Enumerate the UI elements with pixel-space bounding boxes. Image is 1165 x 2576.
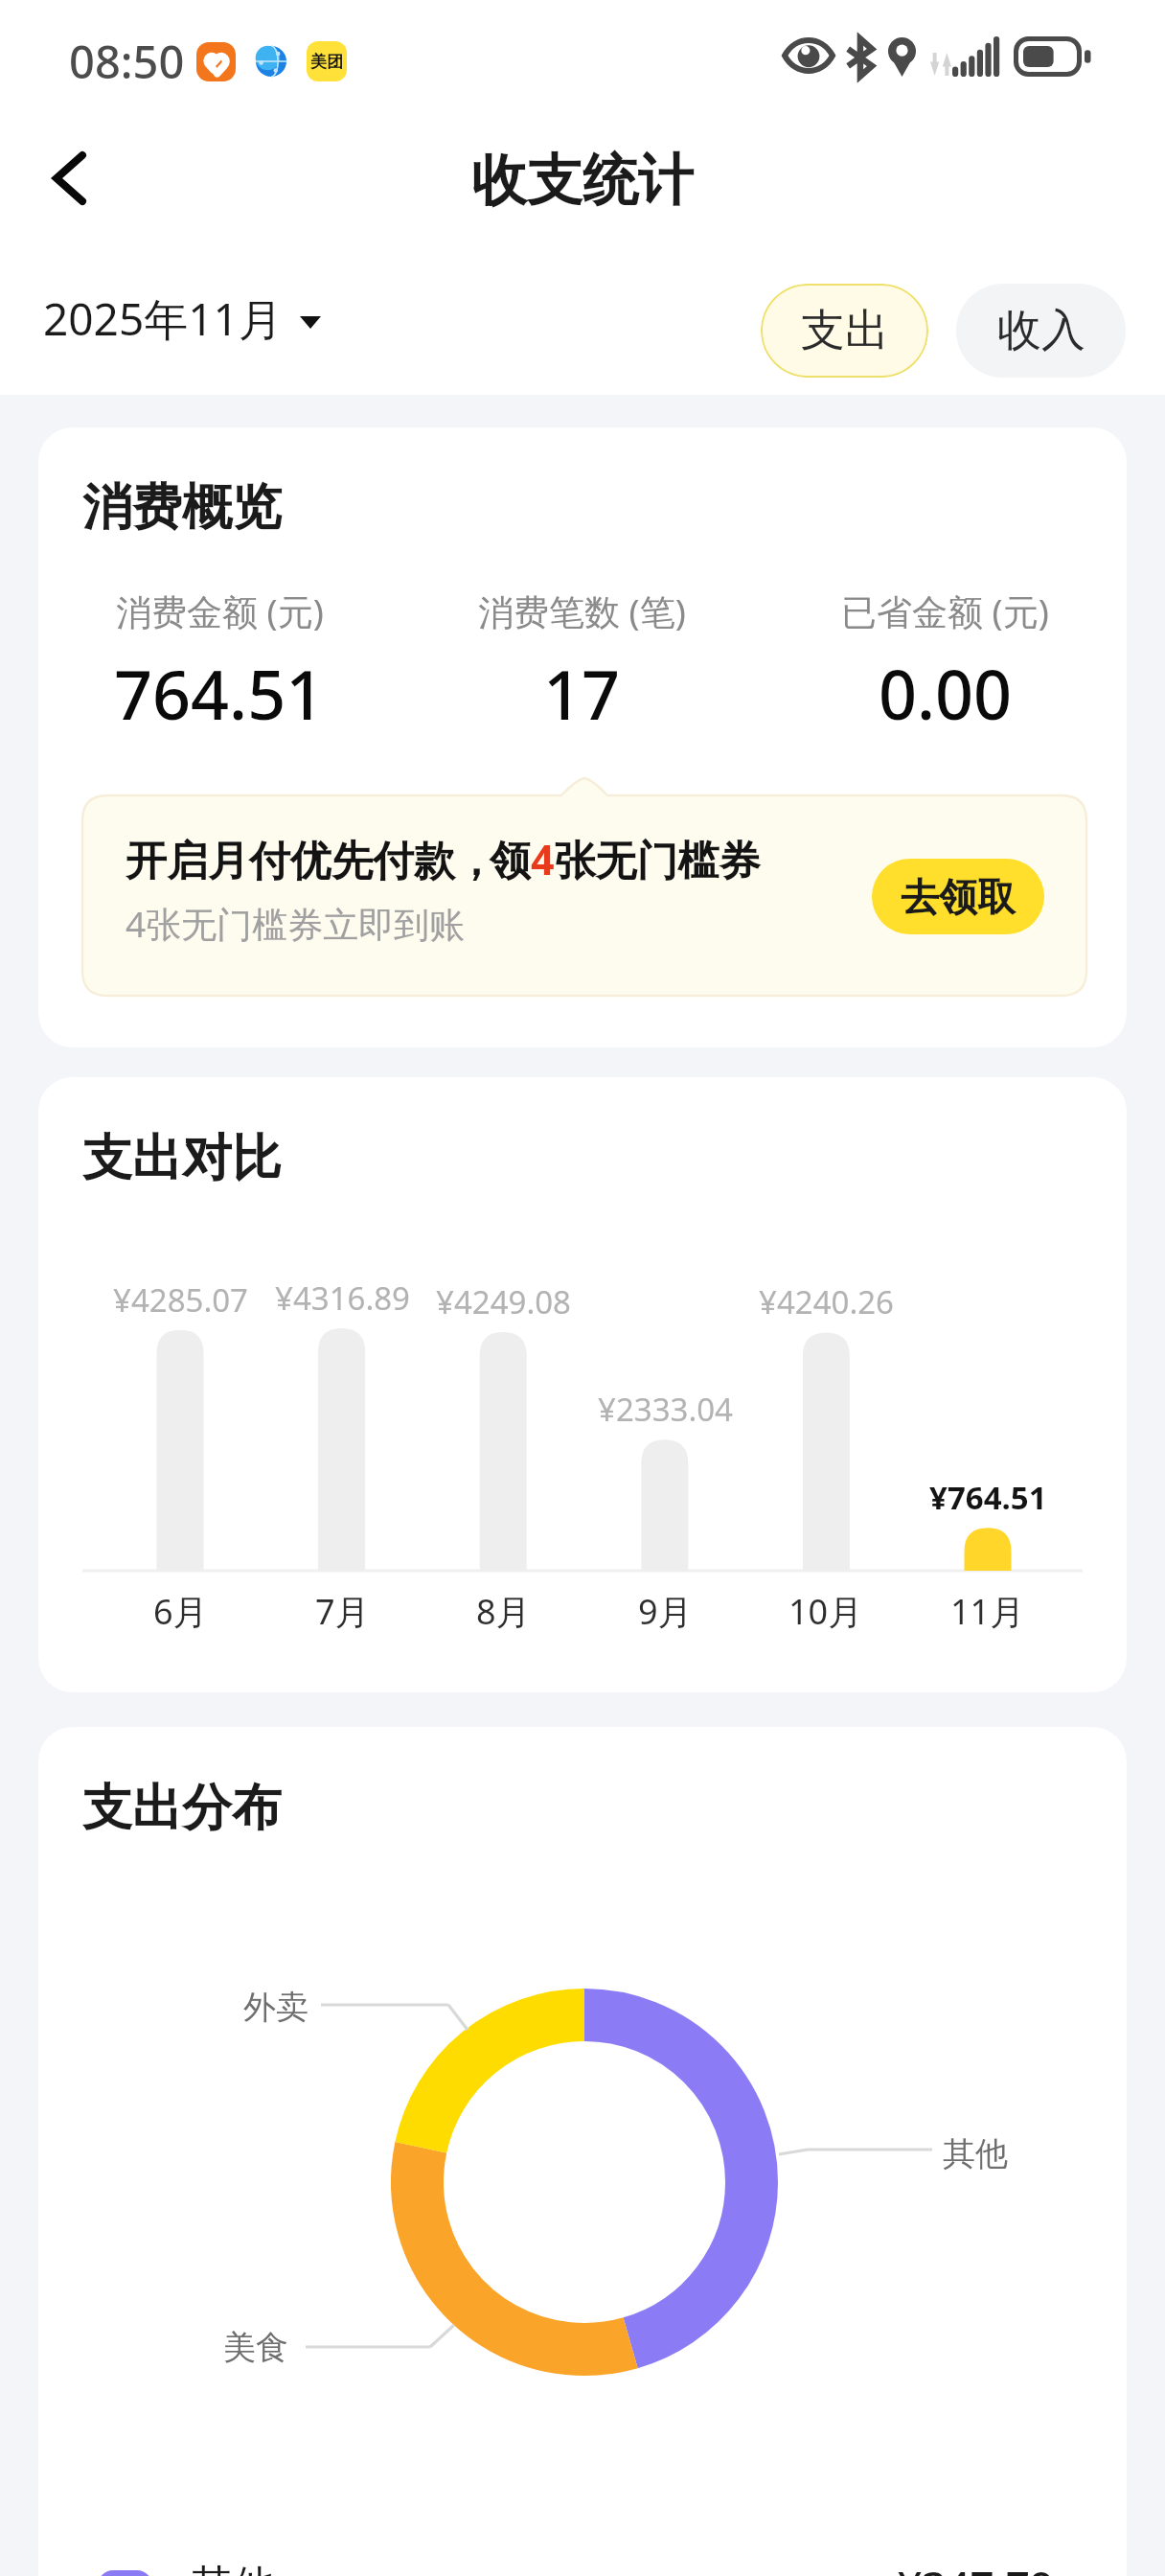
- button[interactable]: 2025年11月: [43, 288, 321, 349]
- staticText: ¥4316.89: [275, 1276, 410, 1320]
- button[interactable]: 其他: [98, 2557, 1054, 2576]
- staticText: ¥2333.04: [598, 1388, 733, 1431]
- staticText: 其他: [943, 2133, 1008, 2174]
- staticText: 2025年11月: [43, 288, 283, 349]
- staticText: 08:50: [69, 31, 185, 92]
- staticText: 外卖: [243, 1987, 308, 2028]
- staticText: 消费笔数 (笔): [478, 586, 686, 635]
- staticText: 美食: [223, 2327, 288, 2368]
- staticText: ¥4240.26: [759, 1280, 894, 1323]
- staticText: 4张无门槛券立即到账: [126, 899, 466, 948]
- button[interactable]: 收入: [956, 284, 1126, 378]
- staticText: 美团: [310, 52, 343, 72]
- staticText: ¥4285.07: [113, 1278, 248, 1322]
- staticText: 去领取: [901, 873, 1016, 921]
- staticText: 收入: [997, 303, 1085, 358]
- staticText: 支出对比: [82, 1127, 282, 1190]
- staticText: 11月: [950, 1588, 1025, 1635]
- staticText: 支出: [801, 303, 889, 358]
- staticText: 9月: [638, 1588, 693, 1635]
- staticText: 6月: [153, 1588, 208, 1635]
- staticText: 开启月付优先付款，领4张无门槛券: [126, 831, 761, 887]
- staticText: 其他: [191, 2560, 275, 2576]
- staticText: 0.00: [879, 648, 1013, 739]
- staticText: 已省金额 (元): [841, 586, 1049, 635]
- staticText: 收支统计: [471, 146, 694, 216]
- staticText: 764.51: [114, 648, 325, 739]
- staticText: 17: [543, 648, 621, 739]
- staticText: 8月: [476, 1588, 531, 1635]
- staticText: ¥764.51: [929, 1476, 1047, 1519]
- button[interactable]: Back: [33, 142, 105, 215]
- staticText: 7月: [315, 1588, 370, 1635]
- staticText: 消费概览: [82, 476, 282, 540]
- staticText: ¥4249.08: [436, 1280, 571, 1323]
- button[interactable]: 去领取: [872, 859, 1044, 934]
- staticText: 消费金额 (元): [116, 586, 324, 635]
- button[interactable]: 支出: [761, 284, 928, 378]
- staticText: ¥347.79: [898, 2557, 1054, 2576]
- staticText: 支出分布: [82, 1777, 282, 1840]
- staticText: 10月: [788, 1588, 863, 1635]
